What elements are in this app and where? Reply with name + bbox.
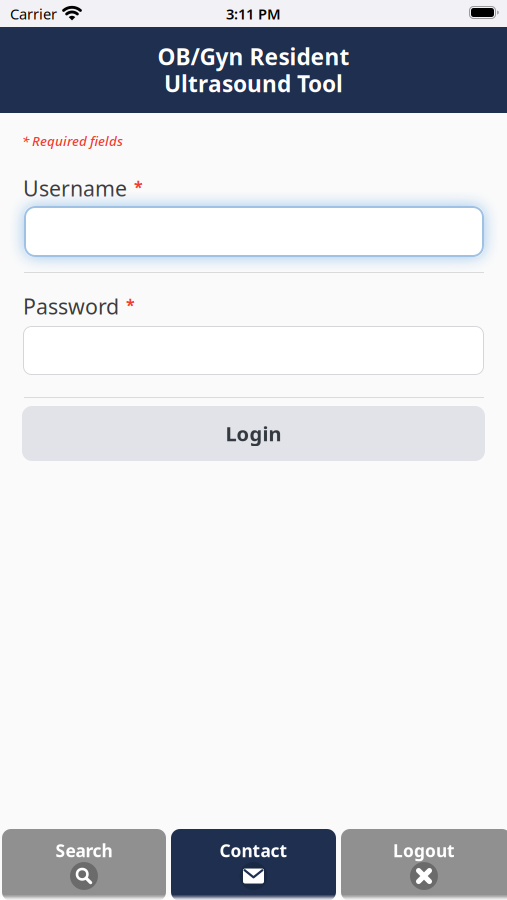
staticText: Ultrasound Tool	[164, 68, 343, 99]
button[interactable]: Username	[24, 206, 484, 257]
button[interactable]: Password	[23, 326, 484, 375]
staticText: Logout	[393, 839, 455, 862]
staticText: Password	[23, 292, 119, 320]
staticText: Contact	[219, 839, 287, 862]
button[interactable]: Login	[22, 406, 485, 461]
staticText: * Required fields	[22, 132, 123, 150]
staticText: Search	[55, 839, 112, 862]
staticText: *	[126, 294, 135, 315]
staticText: Carrier	[10, 4, 57, 23]
staticText: Login	[225, 420, 281, 447]
staticText: OB/Gyn Resident	[157, 41, 349, 71]
staticText: *	[134, 176, 143, 197]
staticText: 3:11 PM	[226, 4, 281, 23]
staticText: Username	[23, 174, 127, 202]
button[interactable]: Logout	[341, 829, 507, 900]
button[interactable]: Contact	[171, 829, 336, 900]
button[interactable]: Search	[2, 829, 166, 900]
